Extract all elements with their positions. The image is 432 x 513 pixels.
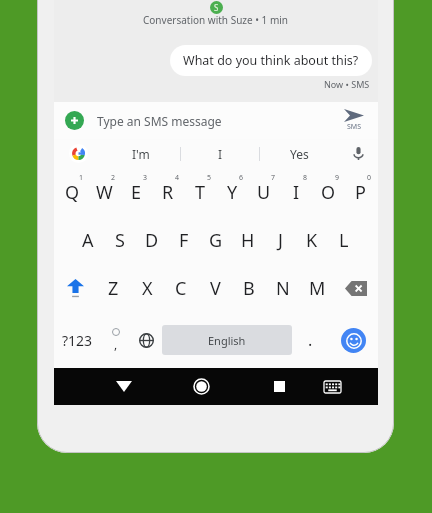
button[interactable]: Send SMS	[330, 102, 378, 139]
button[interactable]: O	[312, 168, 344, 216]
button[interactable]: Add attachment	[65, 111, 84, 130]
staticText: O	[321, 180, 336, 205]
staticText: 4	[175, 173, 180, 183]
staticText: SMS	[347, 122, 362, 132]
button[interactable]: Voice input	[338, 139, 378, 168]
button[interactable]: Backspace	[334, 264, 378, 312]
button[interactable]: W	[88, 168, 120, 216]
button[interactable]: English	[162, 325, 292, 355]
staticText: Y	[227, 180, 238, 205]
staticText: U	[257, 180, 271, 205]
staticText: I'm	[132, 146, 150, 162]
staticText: 0	[367, 173, 372, 183]
staticText: 9	[335, 173, 340, 183]
button[interactable]: B	[232, 264, 266, 312]
button[interactable]: ,	[100, 312, 131, 368]
button[interactable]: I	[181, 139, 259, 168]
staticText: T	[195, 180, 206, 205]
button[interactable]: Q	[56, 168, 88, 216]
staticText: 6	[239, 173, 244, 183]
button[interactable]: S	[104, 216, 136, 264]
staticText: Now • SMS	[324, 78, 370, 90]
staticText: R	[162, 180, 174, 205]
button[interactable]: A	[72, 216, 104, 264]
button[interactable]: What do you think about this?	[170, 45, 372, 76]
button[interactable]: C	[164, 264, 198, 312]
staticText: English	[208, 333, 246, 348]
staticText: 2	[111, 173, 116, 183]
button[interactable]: F	[168, 216, 200, 264]
button[interactable]: Google	[54, 139, 102, 168]
button[interactable]: Y	[216, 168, 248, 216]
button[interactable]: V	[198, 264, 232, 312]
button[interactable]: Switch keyboard	[312, 368, 353, 405]
staticText: A	[82, 228, 94, 253]
button[interactable]: Recent apps	[259, 368, 300, 405]
staticText: M	[309, 276, 326, 301]
staticText: P	[355, 180, 366, 205]
staticText: Q	[65, 180, 80, 205]
staticText: C	[175, 276, 187, 301]
staticText: K	[306, 228, 318, 253]
staticText: E	[131, 180, 142, 205]
button[interactable]: ?123	[54, 312, 100, 368]
staticText: .	[308, 329, 313, 351]
staticText: X	[142, 276, 153, 301]
button[interactable]: J	[264, 216, 296, 264]
button[interactable]: Type an SMS message	[97, 102, 330, 139]
button[interactable]: P	[344, 168, 376, 216]
button[interactable]: U	[248, 168, 280, 216]
button[interactable]: M	[300, 264, 334, 312]
button[interactable]: L	[328, 216, 360, 264]
staticText: D	[145, 228, 159, 253]
button[interactable]: Z	[97, 264, 130, 312]
button[interactable]: N	[266, 264, 300, 312]
staticText: V	[210, 276, 221, 301]
staticText: Z	[108, 276, 119, 301]
staticText: S	[115, 228, 125, 253]
button[interactable]: X	[130, 264, 164, 312]
button[interactable]: G	[200, 216, 232, 264]
button[interactable]: Home	[181, 368, 222, 405]
button[interactable]: Change language	[131, 312, 162, 368]
staticText: S	[214, 2, 219, 13]
button[interactable]: Emoji	[329, 312, 378, 368]
staticText: L	[339, 228, 349, 253]
button[interactable]: Yes	[260, 139, 338, 168]
button[interactable]: I	[280, 168, 312, 216]
button[interactable]: .	[292, 312, 329, 368]
staticText: H	[241, 228, 255, 253]
staticText: What do you think about this?	[183, 52, 359, 69]
staticText: 8	[303, 173, 308, 183]
button[interactable]: Shift	[54, 264, 97, 312]
button[interactable]: I'm	[102, 139, 180, 168]
staticText: B	[243, 276, 255, 301]
button[interactable]: H	[232, 216, 264, 264]
staticText: G	[209, 228, 223, 253]
staticText: F	[179, 228, 189, 253]
button[interactable]: D	[136, 216, 168, 264]
staticText: Type an SMS message	[97, 113, 222, 129]
staticText: I	[293, 180, 300, 205]
staticText: ,	[114, 336, 118, 352]
button[interactable]: R	[152, 168, 184, 216]
staticText: 3	[143, 173, 148, 183]
staticText: ?123	[62, 331, 93, 350]
staticText: Yes	[290, 146, 309, 162]
staticText: 7	[271, 173, 276, 183]
button[interactable]: T	[184, 168, 216, 216]
staticText: J	[278, 228, 283, 253]
button[interactable]: K	[296, 216, 328, 264]
staticText: 5	[207, 173, 212, 183]
staticText: I	[218, 146, 223, 162]
button[interactable]: E	[120, 168, 152, 216]
staticText: Conversation with Suze • 1 min	[143, 13, 289, 27]
staticText: W	[96, 180, 113, 205]
staticText: N	[276, 276, 290, 301]
staticText: 1	[79, 173, 84, 183]
button[interactable]: Back	[103, 368, 144, 405]
